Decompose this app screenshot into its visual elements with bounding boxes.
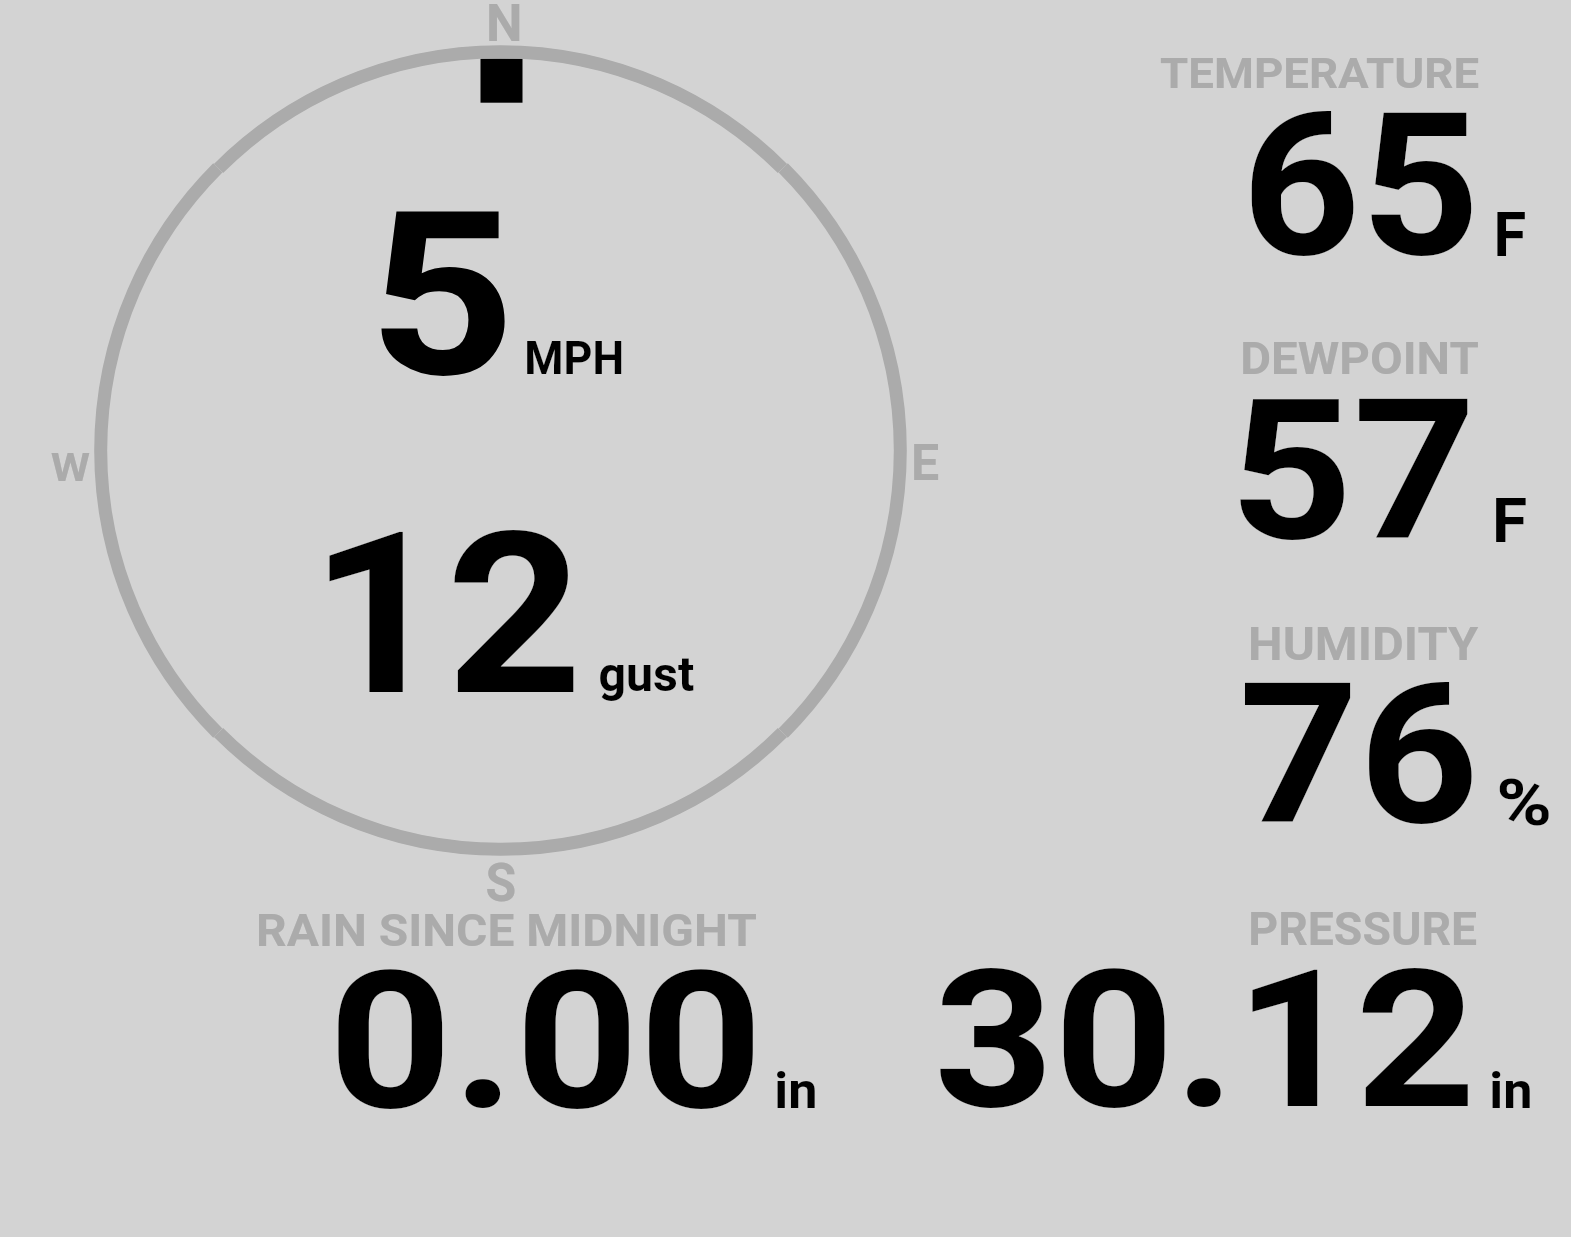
button[interactable]: Wind 5 miles per hour from the north, gu… — [96, 46, 906, 856]
button[interactable]: Rain since midnight 0.00 inches — [230, 885, 870, 1135]
button[interactable]: Temperature 65 degrees Fahrenheit — [1100, 30, 1570, 285]
button[interactable]: Humidity 76 percent — [1100, 600, 1570, 855]
button[interactable]: Pressure 30.12 inches of mercury — [900, 885, 1570, 1135]
button[interactable]: Dewpoint 57 degrees Fahrenheit — [1100, 315, 1570, 570]
